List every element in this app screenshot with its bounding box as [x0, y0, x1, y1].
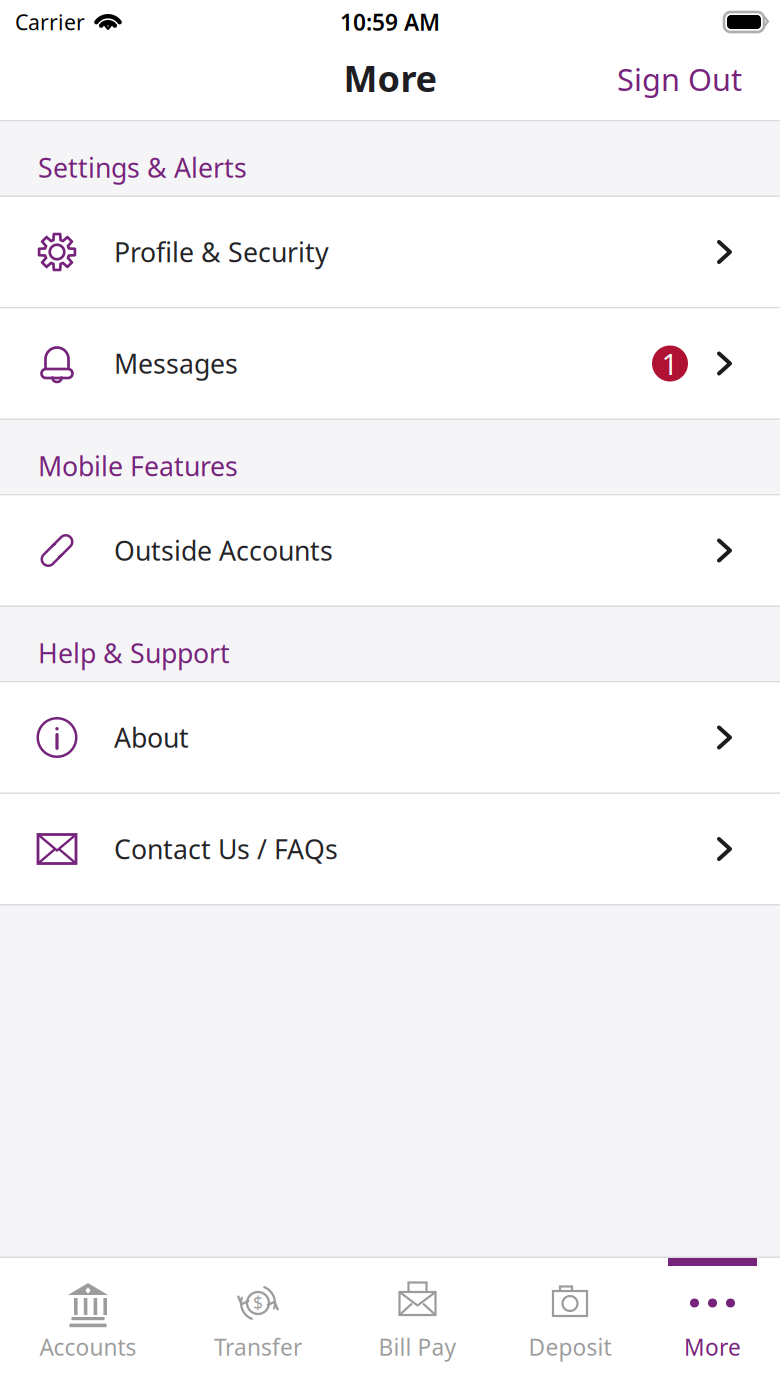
button[interactable]: About	[0, 682, 780, 792]
staticText: More	[343, 54, 436, 102]
staticText: Help & Support	[38, 635, 230, 671]
staticText: Accounts	[39, 1332, 136, 1362]
staticText: Contact Us / FAQs	[114, 831, 338, 867]
staticText: Sign Out	[617, 59, 742, 99]
button[interactable]: $	[176, 1258, 340, 1387]
staticText: Settings & Alerts	[38, 150, 247, 185]
staticText: $	[253, 1291, 263, 1314]
staticText: About	[114, 720, 189, 755]
button[interactable]: More	[645, 1258, 780, 1387]
staticText: 1	[661, 344, 678, 383]
button[interactable]: Profile & Security	[0, 197, 780, 307]
button[interactable]: Contact Us / FAQs	[0, 794, 780, 904]
staticText: Carrier	[15, 8, 85, 36]
button[interactable]: Accounts	[0, 1258, 176, 1387]
button[interactable]: Outside Accounts	[0, 495, 780, 605]
staticText: 10:59 AM	[340, 7, 440, 37]
button[interactable]: Deposit	[495, 1258, 645, 1387]
staticText: More	[684, 1332, 741, 1362]
staticText: Profile & Security	[114, 234, 329, 270]
staticText: Bill Pay	[378, 1332, 456, 1362]
button[interactable]: Messages	[0, 308, 780, 418]
button[interactable]: Sign Out	[595, 44, 780, 120]
staticText: Deposit	[528, 1332, 611, 1362]
staticText: Transfer	[214, 1332, 302, 1362]
button[interactable]: Bill Pay	[340, 1258, 495, 1387]
staticText: Outside Accounts	[114, 533, 333, 568]
staticText: Mobile Features	[38, 448, 238, 484]
staticText: Messages	[114, 346, 238, 381]
